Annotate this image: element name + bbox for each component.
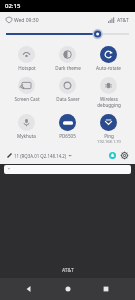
button[interactable]: Auto-rotate [88, 45, 129, 72]
staticText: Screen Cast [14, 96, 40, 102]
button[interactable]: Edit [6, 152, 13, 159]
staticText: Auto-rotate [96, 65, 121, 71]
button[interactable]: Settings [120, 151, 129, 160]
staticText: 02:15 [5, 2, 21, 10]
button[interactable]: Mykhuta [6, 113, 47, 140]
button[interactable]: Ping [88, 113, 129, 145]
staticText: Ping [104, 133, 114, 139]
button[interactable]: Home [58, 279, 78, 299]
staticText: Wireless debugging [97, 96, 121, 108]
button[interactable]: Dark theme [47, 45, 88, 72]
staticText: PD6505 [59, 133, 76, 139]
staticText: Wed 09:30 [14, 17, 39, 24]
button[interactable]: Screen Cast [6, 76, 47, 103]
button[interactable]: PD6505 [47, 113, 88, 140]
staticText: Hotspot [18, 65, 36, 71]
button[interactable]: Hotspot [6, 45, 47, 72]
button[interactable]: Wireless debugging [88, 76, 129, 109]
staticText: 192.168.1.70 [97, 139, 121, 144]
button[interactable]: User [108, 151, 117, 160]
staticText: AT&T [117, 17, 129, 24]
button[interactable] [6, 29, 129, 39]
staticText: • [8, 166, 10, 173]
staticText: 11 (RQ3A.01 Q2.148.14.2) •• [14, 153, 72, 159]
button[interactable]: Data Saver [47, 76, 88, 103]
staticText: AT&T [62, 267, 74, 274]
staticText: Data Saver [56, 96, 80, 102]
staticText: Mykhuta [17, 133, 36, 139]
staticText: Dark theme [55, 65, 81, 71]
button[interactable]: Back [19, 279, 39, 299]
button[interactable]: • [4, 165, 131, 174]
button[interactable]: Recents [96, 279, 116, 299]
